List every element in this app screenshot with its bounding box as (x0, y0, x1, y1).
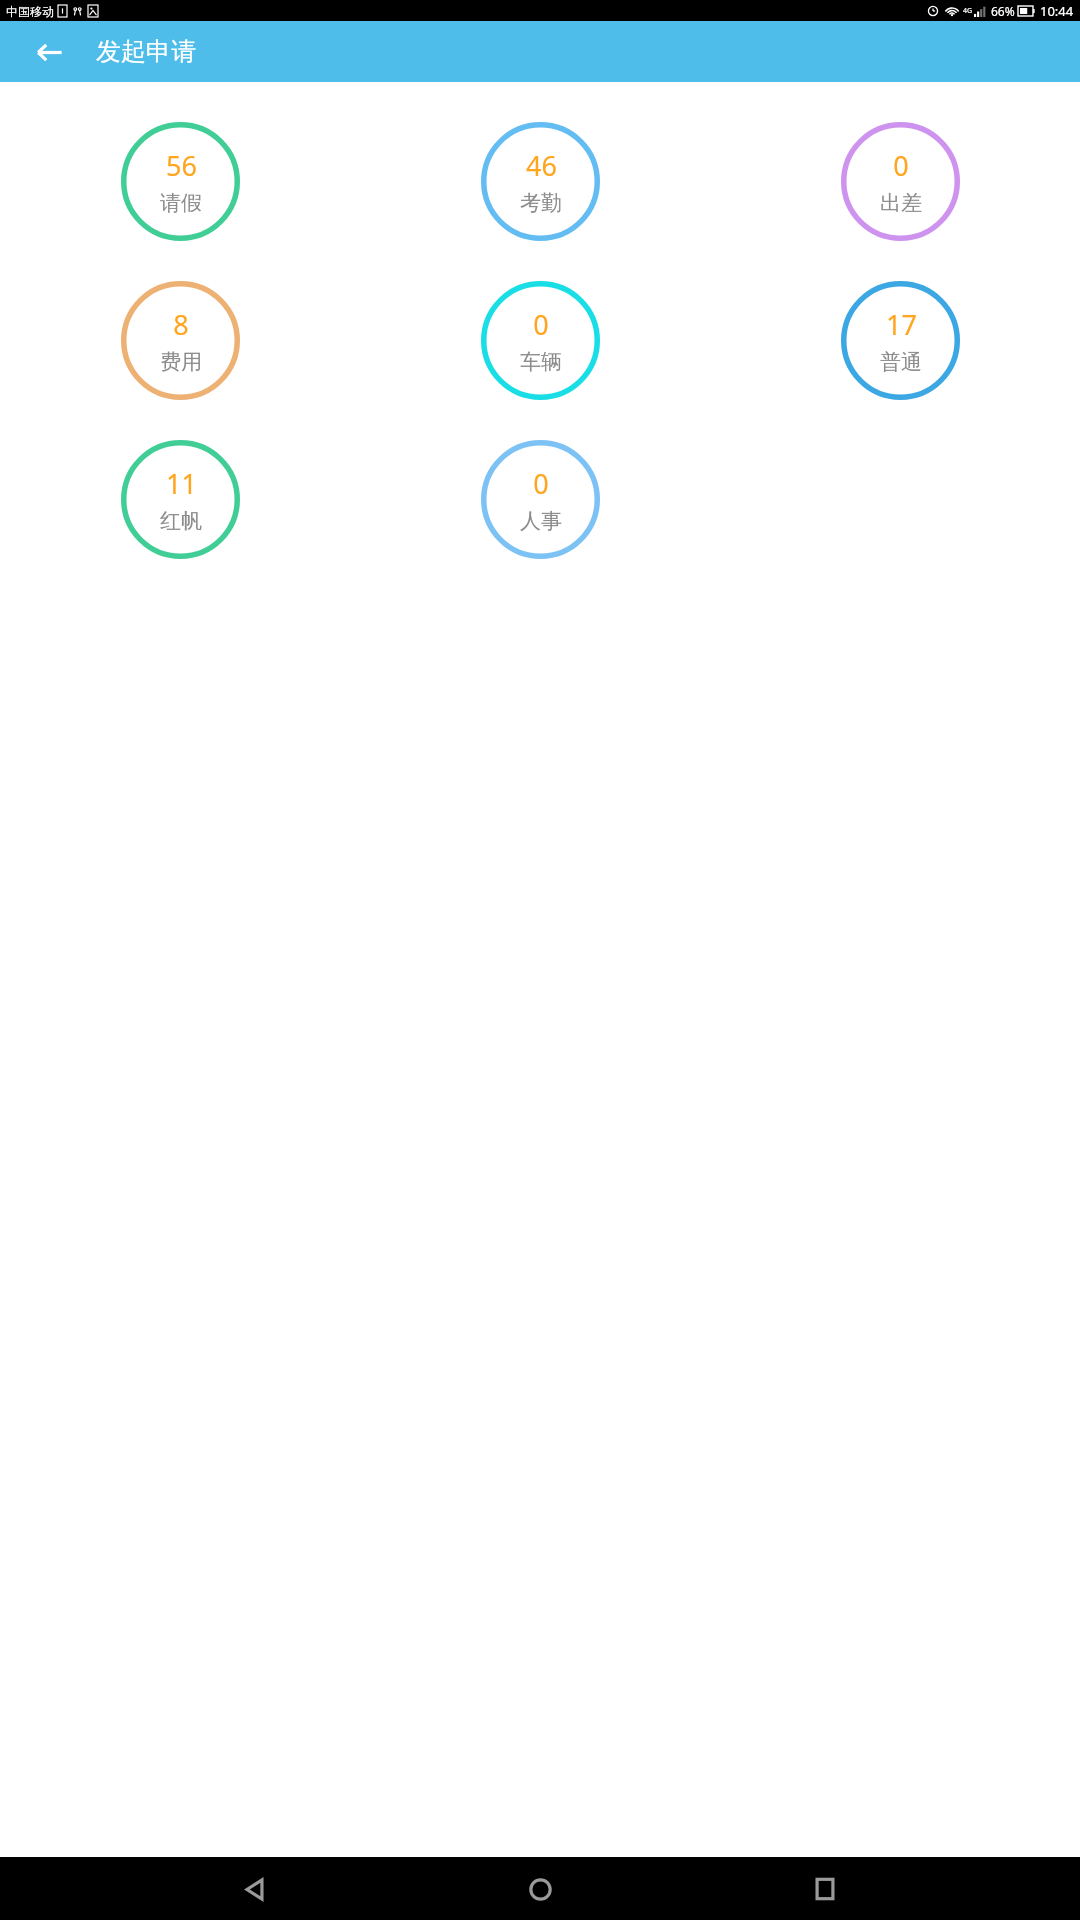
staticText: 发起申请 (96, 36, 196, 67)
staticText: 普通 (880, 349, 922, 375)
button[interactable]: 8 (121, 281, 240, 400)
staticText: 8 (173, 306, 189, 343)
button[interactable]: 0 (841, 122, 960, 241)
button[interactable]: 11 (121, 440, 240, 559)
button[interactable]: 56 (121, 122, 240, 241)
button[interactable]: Home (510, 1859, 570, 1919)
staticText: 请假 (160, 190, 202, 216)
staticText: 66% (991, 3, 1015, 19)
button[interactable]: 0 (481, 440, 600, 559)
staticText: 0 (533, 306, 549, 343)
button[interactable]: 返回 (22, 25, 76, 79)
staticText: 56 (166, 147, 197, 184)
staticText: 费用 (160, 349, 202, 375)
staticText: 4G (963, 6, 973, 16)
staticText: 46 (526, 147, 557, 184)
staticText: 考勤 (520, 190, 562, 216)
staticText: 人事 (520, 508, 562, 534)
staticText: 10:44 (1040, 2, 1074, 20)
button[interactable]: 46 (481, 122, 600, 241)
staticText: 车辆 (520, 349, 562, 375)
staticText: 红帆 (160, 508, 202, 534)
staticText: 11 (166, 465, 197, 502)
staticText: 出差 (880, 190, 922, 216)
staticText: 0 (893, 147, 909, 184)
staticText: 中国移动 (6, 4, 54, 19)
button[interactable]: Back (225, 1859, 285, 1919)
button[interactable]: 17 (841, 281, 960, 400)
button[interactable]: 0 (481, 281, 600, 400)
staticText: 17 (886, 306, 917, 343)
staticText: 0 (533, 465, 549, 502)
button[interactable]: Recents (795, 1859, 855, 1919)
